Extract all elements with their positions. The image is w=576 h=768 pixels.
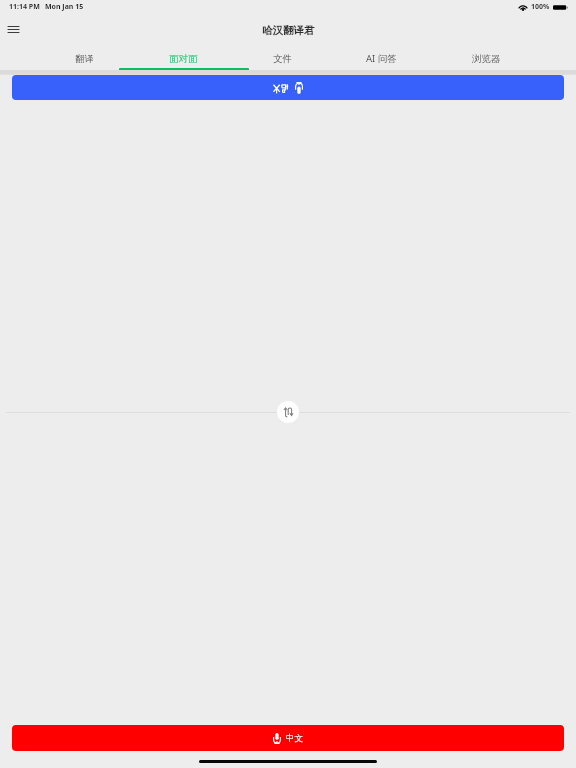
button[interactable]: 文件 [273, 45, 292, 72]
staticText: 浏览器 [472, 53, 501, 65]
button[interactable]: Swap languages [277, 401, 299, 423]
button[interactable]: AI 问答 [366, 45, 397, 72]
staticText: 哈汉翻译君 [262, 24, 315, 37]
button[interactable]: 翻译 [75, 45, 94, 72]
staticText: 翻译 [75, 53, 94, 65]
staticText: 面对面 [169, 53, 198, 65]
staticText: 100% [531, 2, 550, 12]
staticText: Mon Jan 15 [45, 2, 84, 12]
staticText: 11:14 PM [9, 2, 40, 12]
button[interactable]: Speak Kazakh [12, 75, 564, 100]
staticText: 中文 [286, 733, 304, 744]
button[interactable]: 浏览器 [472, 45, 501, 72]
button[interactable]: 面对面 [169, 45, 198, 72]
button[interactable]: Open navigation menu [2, 18, 24, 40]
button[interactable]: 中文 [12, 725, 564, 751]
staticText: AI 问答 [366, 52, 397, 65]
staticText: 文件 [273, 53, 292, 65]
